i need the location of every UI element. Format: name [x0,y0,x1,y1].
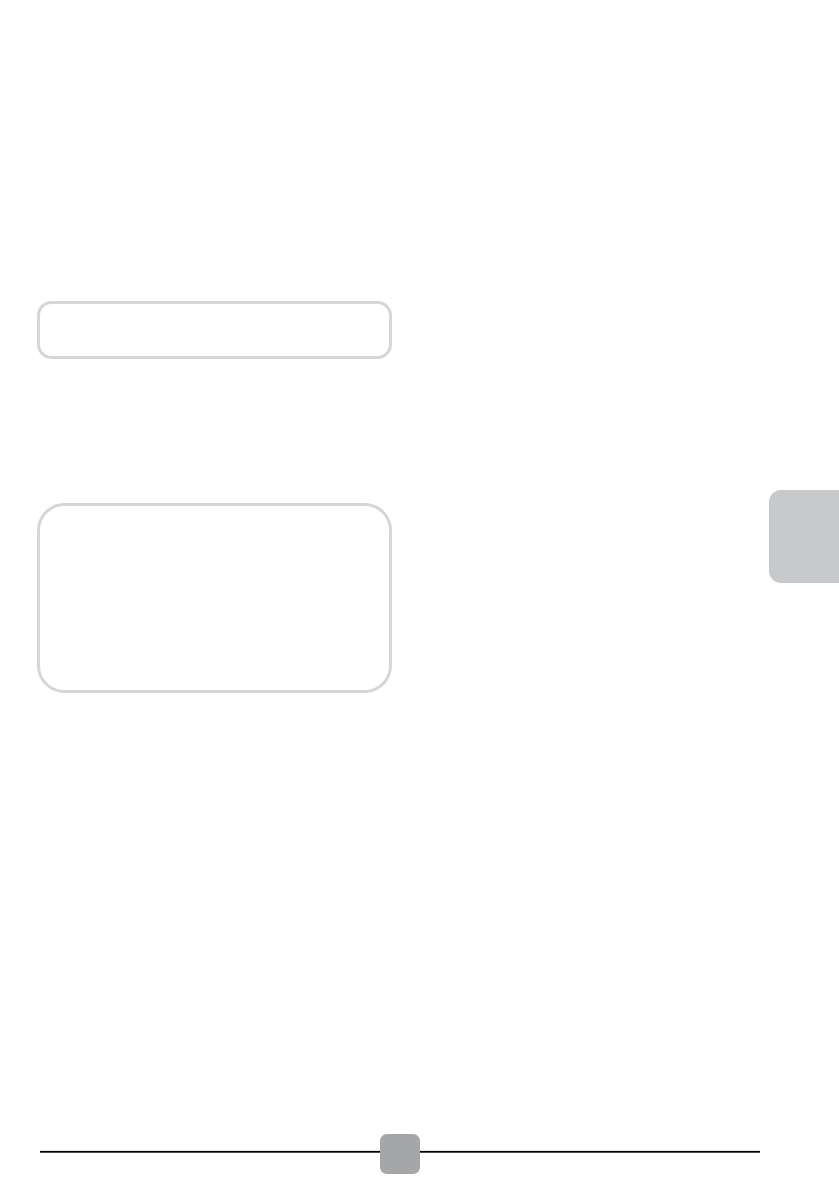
button[interactable]: Card [37,503,392,693]
button[interactable]: Divider handle [380,1134,420,1174]
button[interactable]: Text field [37,301,392,359]
button[interactable]: Side panel [769,490,839,583]
